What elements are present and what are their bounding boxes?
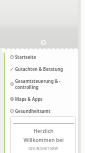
button[interactable]: Startseite (6, 51, 75, 63)
button[interactable]: Herzlich (10, 116, 76, 153)
staticText: GESUNDHEIT.NRW (28, 146, 58, 151)
staticText: Herzlich (33, 127, 54, 134)
button[interactable]: Gesundheitsamt (6, 105, 75, 117)
staticText: Gesamtsteuerung & - controlling (15, 78, 61, 90)
button[interactable]: Maps & Apps (6, 93, 75, 105)
staticText: Maps & Apps (15, 96, 43, 102)
staticText: Gesundheitsamt (15, 108, 51, 114)
button[interactable]: Gesamtsteuerung & - controlling (6, 75, 75, 93)
staticText: Gutachten & Beratung (15, 66, 64, 72)
staticText: Willkommen bei (23, 136, 64, 143)
button[interactable]: Gutachten & Beratung (6, 63, 75, 75)
staticText: Startseite (15, 54, 37, 60)
button[interactable]: Next (41, 40, 46, 45)
